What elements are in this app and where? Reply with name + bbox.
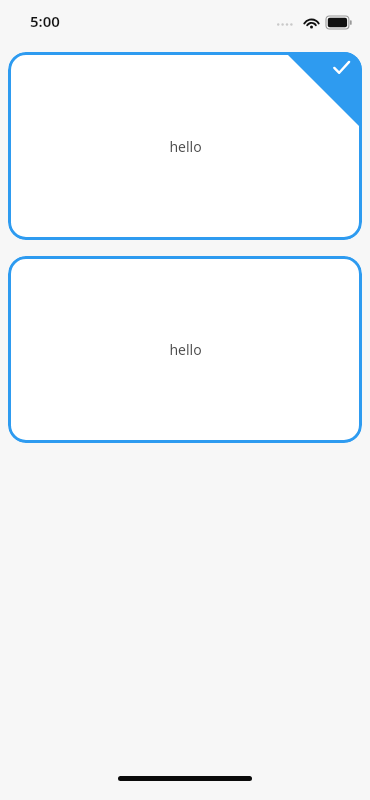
other: Selected bbox=[8, 52, 362, 240]
button[interactable]: Selected bbox=[8, 52, 362, 240]
staticText: 5:00 bbox=[30, 11, 60, 31]
staticText: hello bbox=[169, 137, 202, 156]
button[interactable]: hello bbox=[8, 256, 362, 443]
staticText: hello bbox=[169, 340, 202, 359]
